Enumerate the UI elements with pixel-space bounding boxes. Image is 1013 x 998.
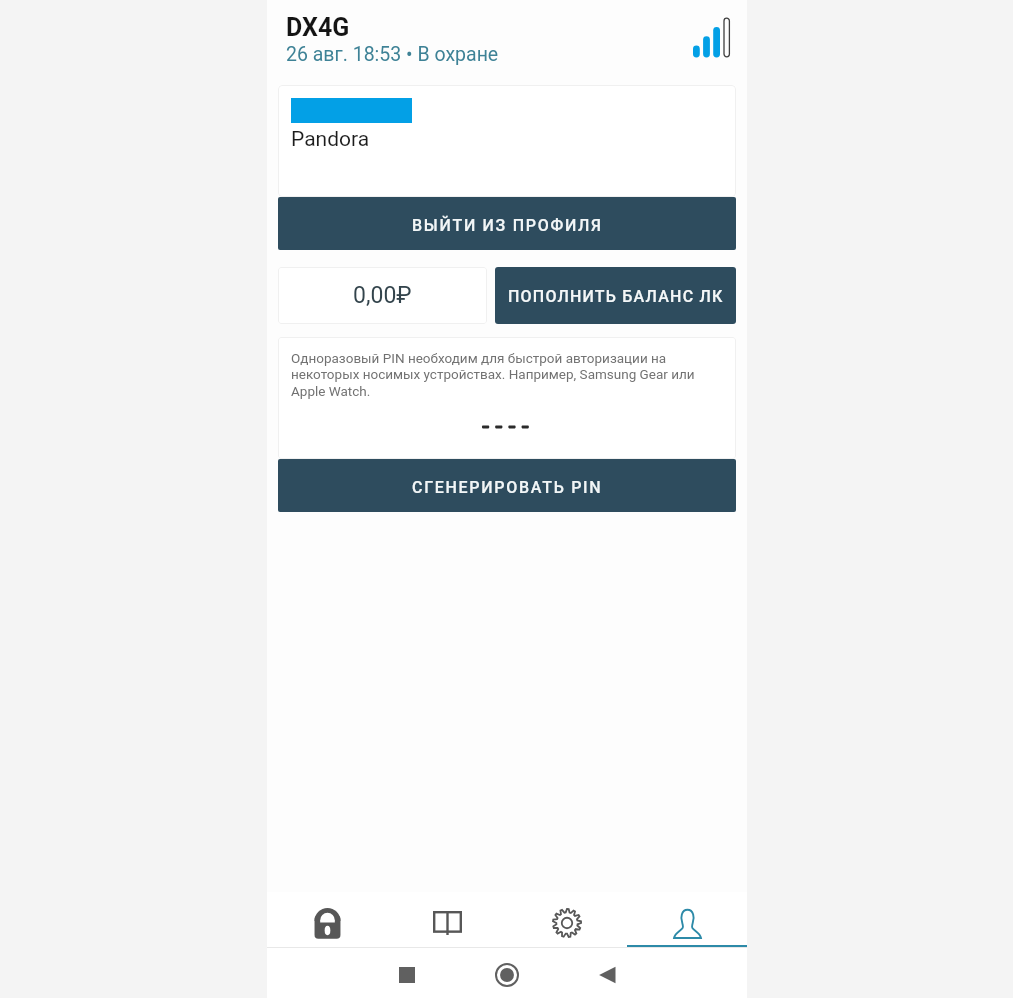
staticText: ПОПОЛНИТЬ БАЛАНС ЛК	[508, 287, 724, 306]
button[interactable]: Signal strength	[686, 11, 738, 63]
button[interactable]: Recents	[387, 955, 427, 995]
button[interactable]: Profile	[627, 892, 747, 948]
staticText: 0,00₽	[353, 282, 412, 309]
staticText: СГЕНЕРИРОВАТЬ PIN	[412, 478, 603, 497]
button[interactable]: Home	[487, 955, 527, 995]
button[interactable]: Security	[267, 892, 387, 948]
button[interactable]: ВЫЙТИ ИЗ ПРОФИЛЯ	[278, 197, 736, 250]
button[interactable]: Back	[587, 955, 627, 995]
staticText: Pandora	[291, 127, 370, 152]
button[interactable]: ПОПОЛНИТЬ БАЛАНС ЛК	[495, 267, 736, 324]
staticText: ВЫЙТИ ИЗ ПРОФИЛЯ	[412, 216, 603, 235]
staticText: 26 авг. 18:53 • В охране	[286, 43, 499, 66]
staticText: Одноразовый PIN необходим для быстрой ав…	[291, 350, 722, 400]
button[interactable]: Settings	[507, 892, 627, 948]
button[interactable]: СГЕНЕРИРОВАТЬ PIN	[278, 459, 736, 512]
button[interactable]: Journal	[387, 892, 507, 948]
staticText: DX4G	[286, 13, 350, 42]
